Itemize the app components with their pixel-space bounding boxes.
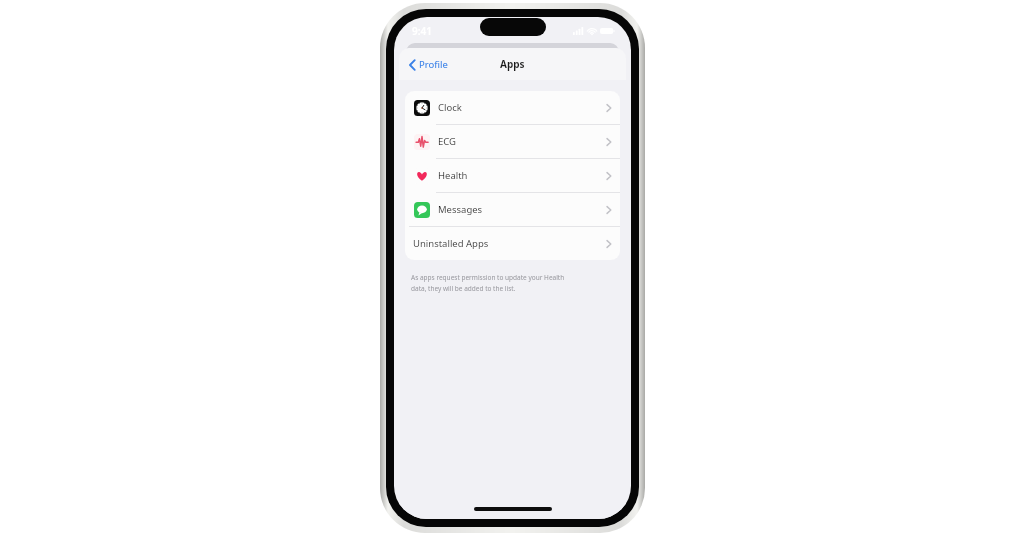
staticText: As apps request permission to update you… — [411, 273, 565, 282]
button[interactable]: Health — [405, 158, 620, 192]
button[interactable]: Messages — [405, 192, 620, 226]
staticText: ECG — [438, 135, 457, 148]
staticText: 9:41 — [412, 24, 432, 38]
button[interactable]: Profile — [406, 55, 451, 74]
button[interactable]: ECG — [405, 124, 620, 158]
staticText: Clock — [438, 101, 462, 114]
button[interactable]: Uninstalled Apps — [405, 226, 620, 260]
staticText: Profile — [419, 58, 448, 71]
button[interactable]: Clock — [405, 91, 620, 124]
staticText: Uninstalled Apps — [413, 237, 489, 250]
staticText: Messages — [438, 203, 483, 216]
staticText: data, they will be added to the list. — [411, 284, 516, 293]
staticText: Health — [438, 169, 468, 182]
staticText: Apps — [500, 57, 525, 71]
